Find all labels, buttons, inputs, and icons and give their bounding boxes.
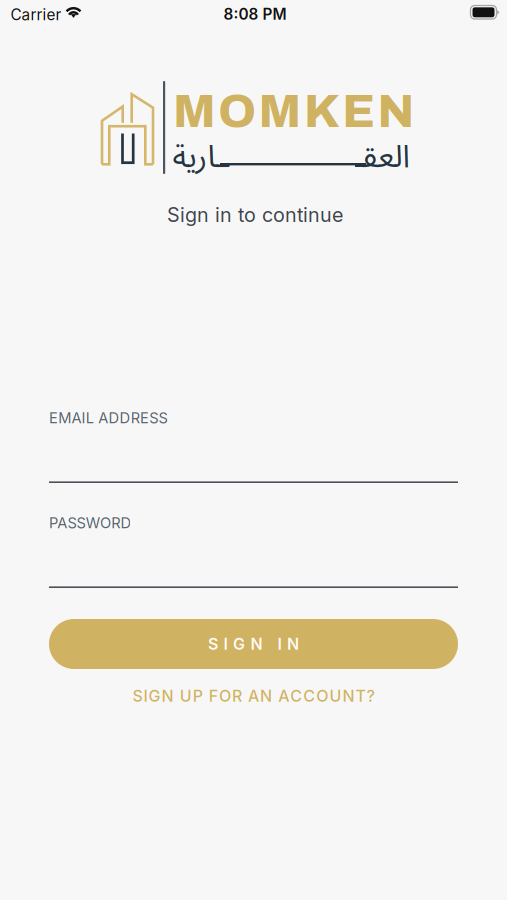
staticText: MOMKEN (173, 86, 414, 137)
button[interactable]: SIGN UP FOR AN ACCOUNT? (49, 681, 458, 711)
staticText: SIGN UP FOR AN ACCOUNT? (132, 686, 375, 706)
staticText: PASSWORD (49, 514, 131, 532)
staticText: EMAIL ADDRESS (49, 409, 167, 427)
staticText: SIGN IN (208, 634, 299, 654)
staticText: Carrier (10, 5, 61, 24)
button[interactable]: SIGN IN (49, 619, 458, 669)
staticText: 8:08 PM (223, 5, 286, 24)
staticText: العقـ (354, 124, 409, 190)
staticText: ـارية (172, 124, 231, 190)
staticText: Sign in to continue (167, 203, 343, 227)
